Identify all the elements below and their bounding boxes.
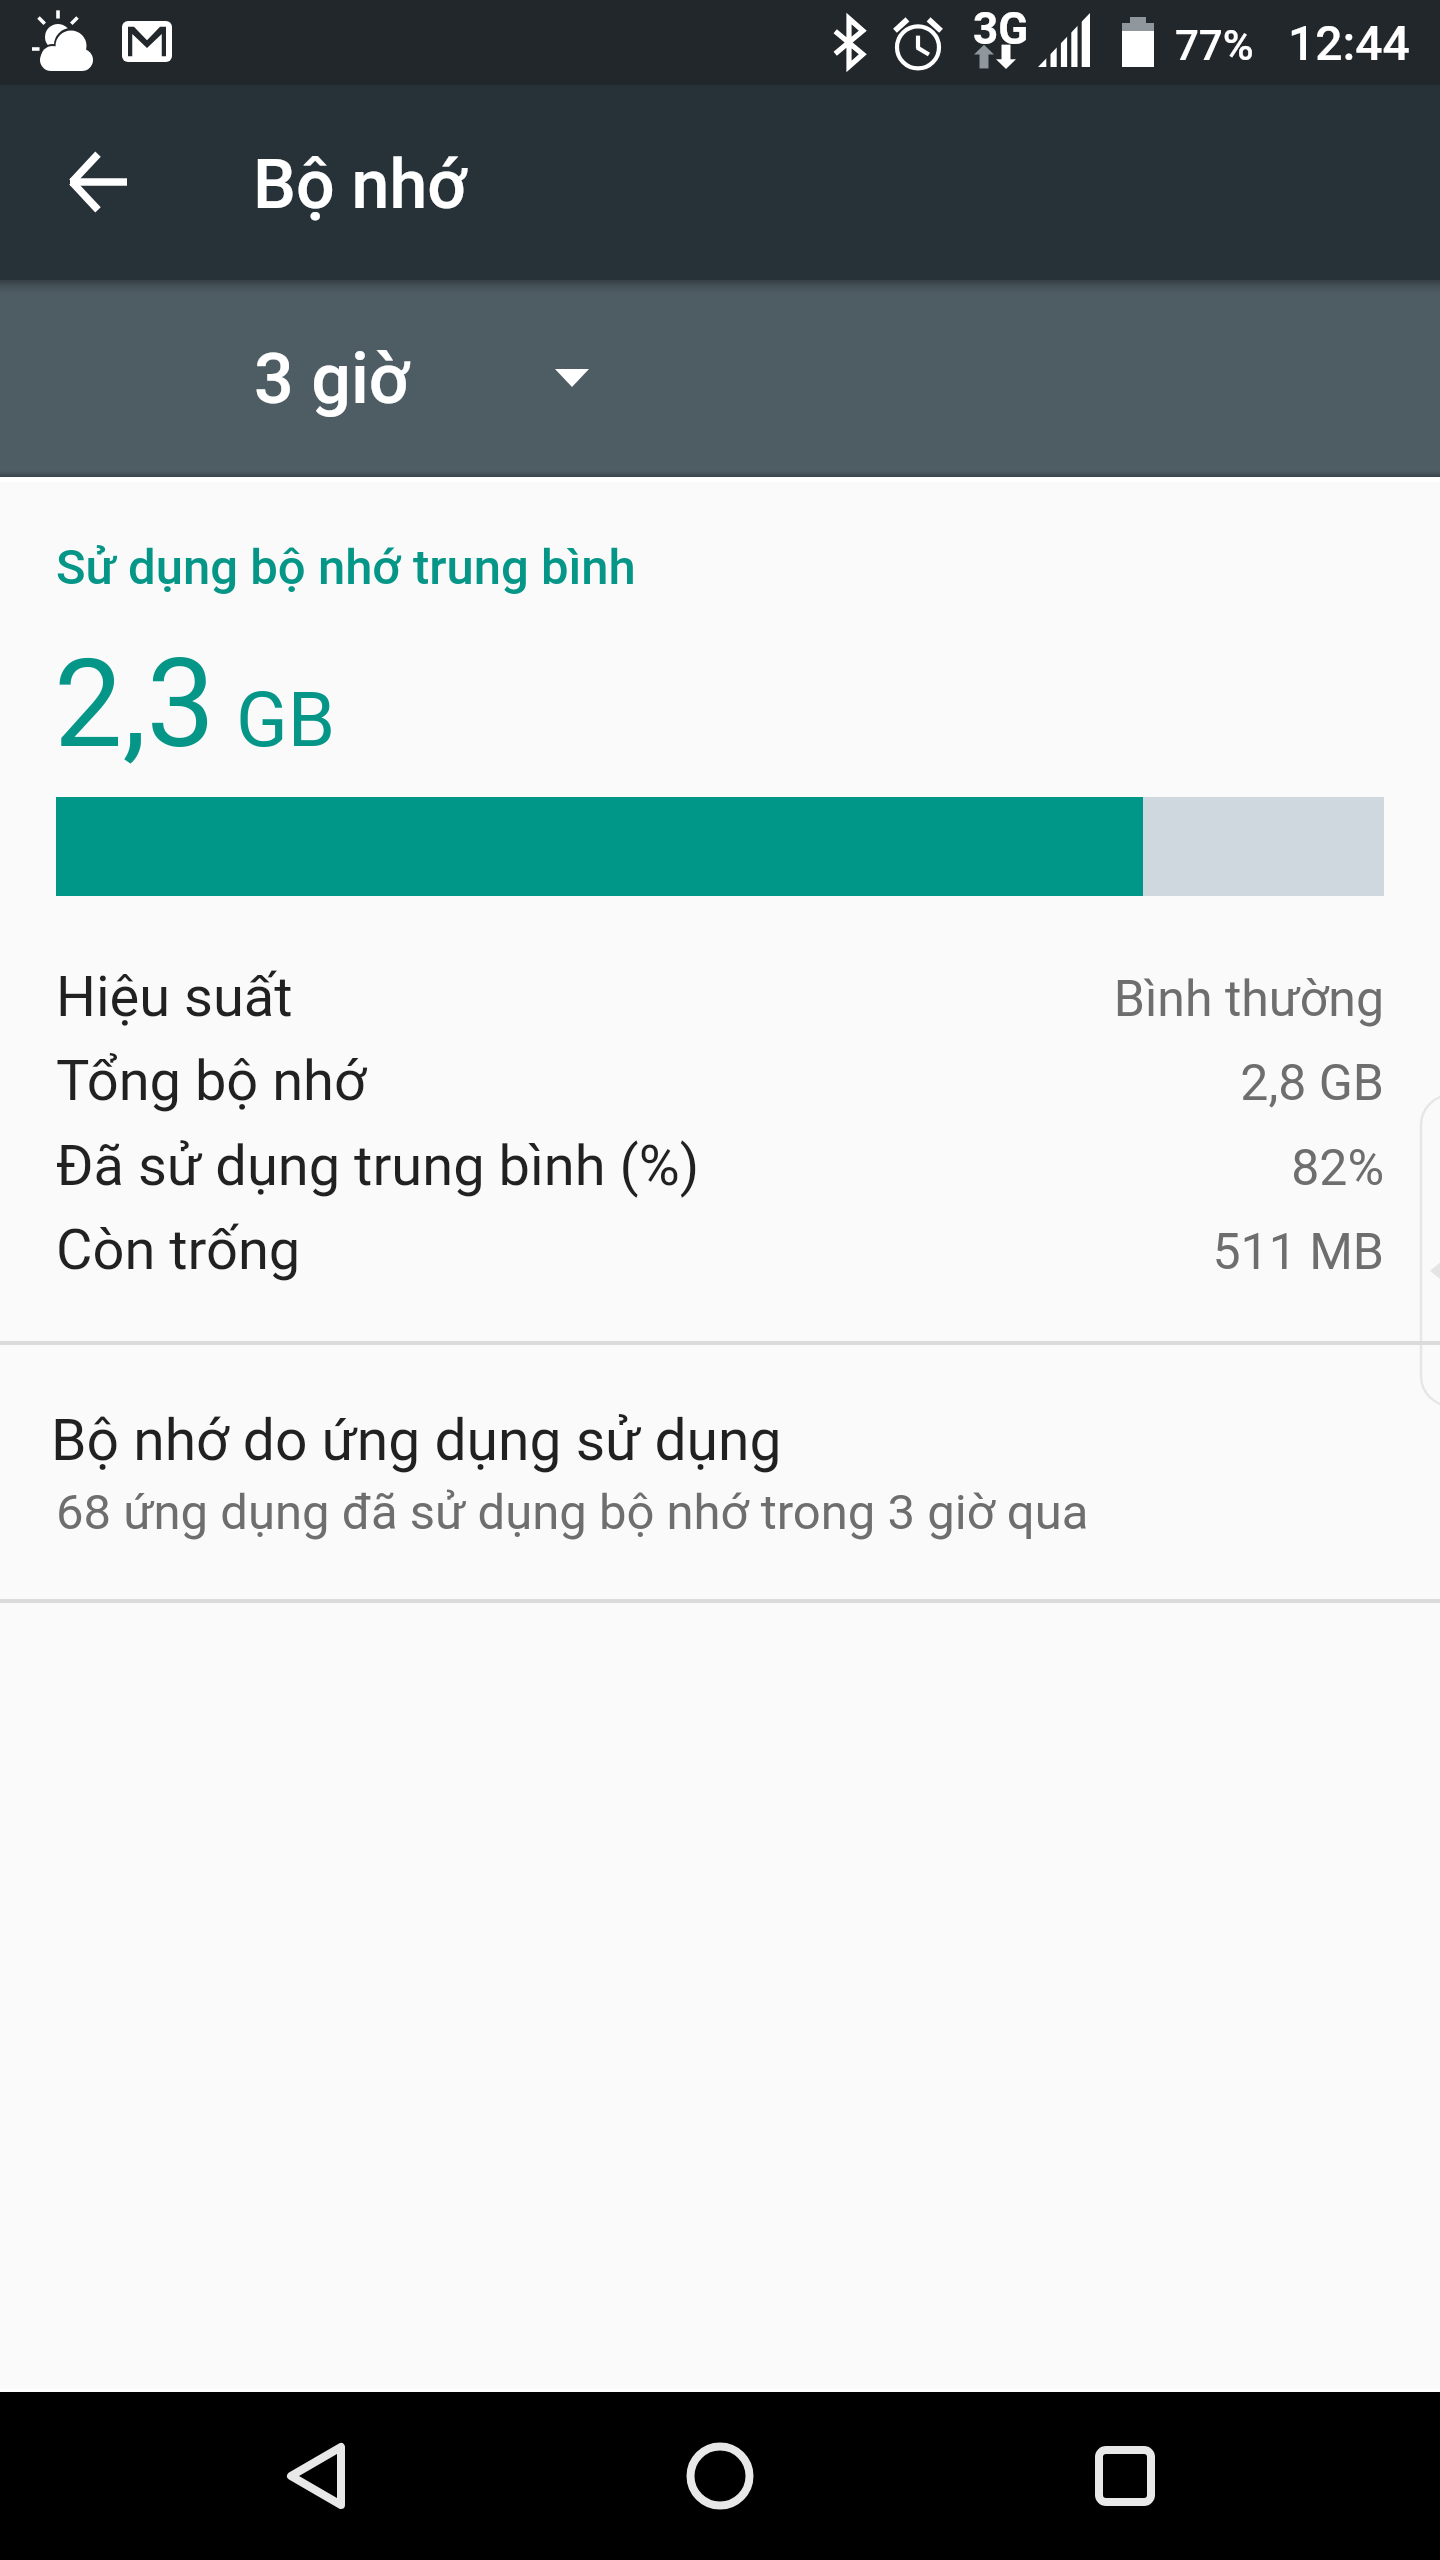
button[interactable]: Back <box>236 2396 396 2556</box>
button[interactable]: 3 giờ <box>214 300 634 458</box>
staticText: 12:44 <box>1288 15 1410 71</box>
staticText: Đã sử dụng trung bình (%) <box>56 1133 700 1199</box>
staticText: Bình thường <box>1113 970 1384 1029</box>
staticText: Còn trống <box>56 1217 301 1283</box>
staticText: 77% <box>1175 21 1254 70</box>
button[interactable]: Recent apps <box>1045 2396 1205 2556</box>
staticText: 2,8 GB <box>1240 1054 1384 1113</box>
staticText: Hiệu suất <box>56 964 293 1030</box>
staticText: Tổng bộ nhớ <box>56 1048 366 1114</box>
staticText: Bộ nhớ <box>253 145 467 225</box>
staticText: 68 ứng dụng đã sử dụng bộ nhớ trong 3 gi… <box>56 1484 1089 1541</box>
button[interactable]: Back <box>42 126 154 238</box>
staticText: 3G <box>973 3 1029 55</box>
button[interactable]: Home <box>640 2396 800 2556</box>
staticText: Bộ nhớ do ứng dụng sử dụng <box>51 1407 782 1474</box>
staticText: 82% <box>1291 1139 1384 1198</box>
button[interactable]: Bộ nhớ do ứng dụng sử dụng <box>0 1345 1440 1599</box>
staticText: 511 MB <box>1212 1223 1384 1282</box>
staticText: GB <box>236 675 336 764</box>
staticText: Sử dụng bộ nhớ trung bình <box>56 539 636 596</box>
staticText: 2,3 <box>54 633 216 776</box>
staticText: 3 giờ <box>254 338 410 420</box>
